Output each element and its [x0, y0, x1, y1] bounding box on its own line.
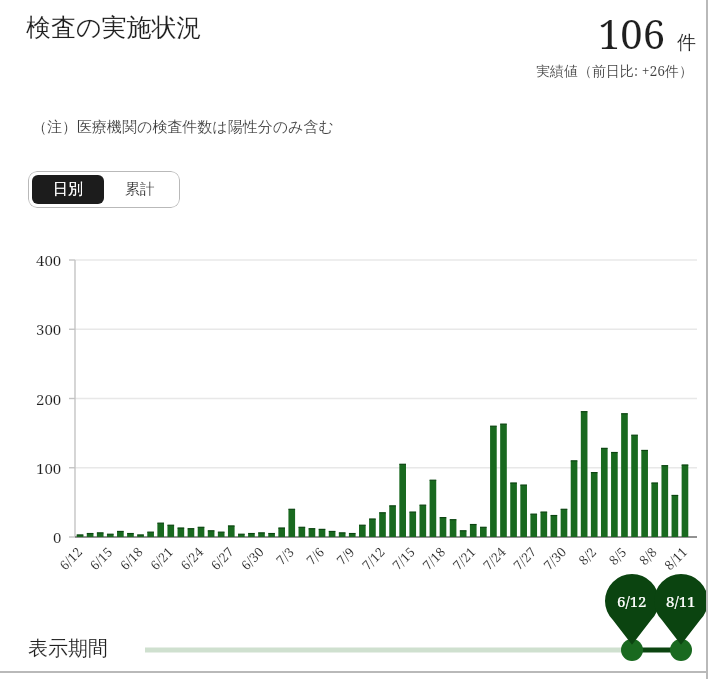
staticText: 表示期間: [28, 636, 108, 661]
button[interactable]: 累計: [104, 175, 176, 204]
button[interactable]: 日別: [32, 175, 104, 204]
staticText: 累計: [125, 180, 155, 199]
staticText: 件: [677, 31, 696, 55]
staticText: （注）医療機関の検査件数は陽性分のみ含む: [32, 118, 334, 137]
staticText: 日別: [53, 180, 83, 199]
staticText: 検査の実施状況: [26, 12, 202, 43]
staticText: 実績値（前日比: +26件）: [536, 61, 694, 80]
staticText: 106: [598, 6, 666, 60]
button[interactable]: 表示期間スライダー: [0, 0, 720, 679]
